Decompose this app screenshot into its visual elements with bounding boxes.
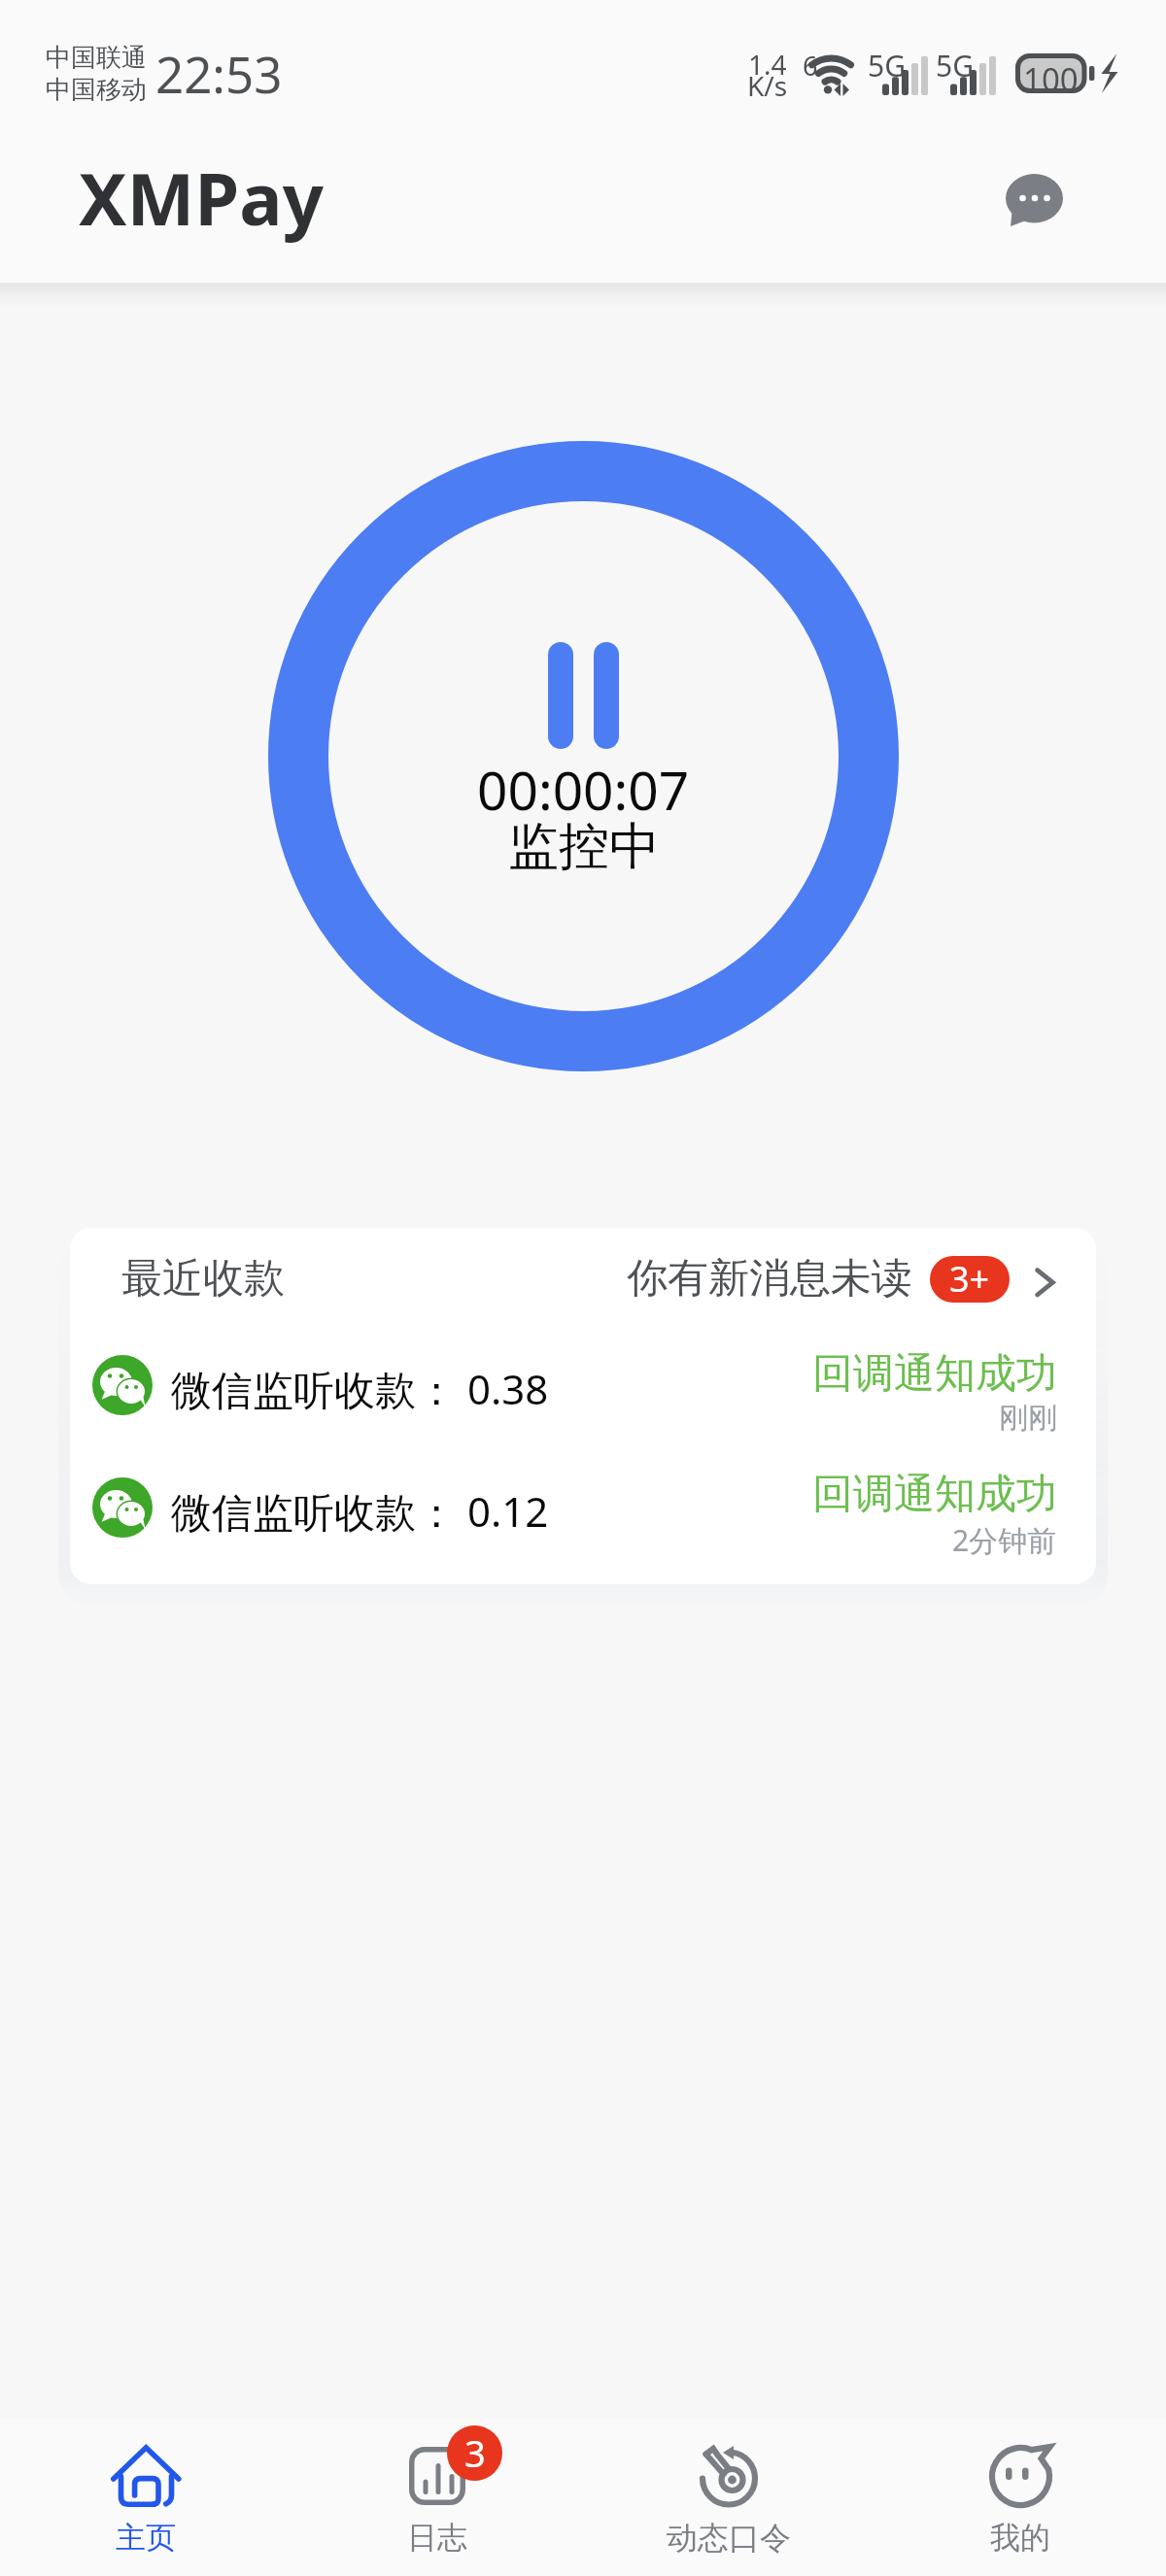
staticText: 动态口令 — [667, 2519, 791, 2558]
staticText: 3 — [464, 2427, 486, 2478]
staticText: 5G — [868, 46, 906, 85]
staticText: 回调通知成功 — [812, 1469, 1057, 1520]
staticText: 主页 — [116, 2519, 176, 2557]
staticText: 你有新消息未读 — [627, 1253, 912, 1305]
button[interactable]: 动态口令 — [583, 2418, 874, 2576]
staticText: 5G — [936, 46, 974, 85]
staticText: 6 — [803, 48, 818, 84]
staticText: 微信监听收款： 0.38 — [171, 1361, 549, 1416]
button[interactable]: 我的 — [874, 2418, 1166, 2576]
staticText: 最近收款 — [121, 1253, 285, 1305]
staticText: K/s — [747, 67, 788, 104]
staticText: 微信监听收款： 0.12 — [171, 1483, 549, 1539]
button[interactable]: Messages — [987, 153, 1080, 247]
button[interactable]: 微信监听收款： 0.12 — [70, 1451, 1096, 1574]
button[interactable]: 3 — [291, 2418, 583, 2576]
button[interactable]: 微信监听收款： 0.38 — [70, 1329, 1096, 1451]
staticText: 00:00:07 — [477, 753, 690, 826]
staticText: 监控中 — [508, 815, 660, 879]
staticText: 2分钟前 — [952, 1520, 1057, 1560]
staticText: 1.4 — [748, 46, 787, 83]
button[interactable]: 主页 — [0, 2418, 291, 2576]
staticText: 中国移动 — [46, 74, 147, 106]
staticText: 3+ — [949, 1256, 990, 1302]
staticText: 22:53 — [155, 40, 283, 107]
staticText: 刚刚 — [999, 1400, 1057, 1437]
staticText: 我的 — [990, 2519, 1050, 2557]
button[interactable]: 你有新消息未读 — [627, 1253, 1056, 1305]
staticText: 100 — [1023, 57, 1079, 101]
staticText: 回调通知成功 — [812, 1348, 1057, 1400]
button[interactable]: Pause monitoring — [268, 441, 899, 1071]
staticText: 日志 — [407, 2519, 467, 2557]
staticText: XMPay — [79, 149, 324, 247]
staticText: 中国联通 — [46, 42, 147, 74]
